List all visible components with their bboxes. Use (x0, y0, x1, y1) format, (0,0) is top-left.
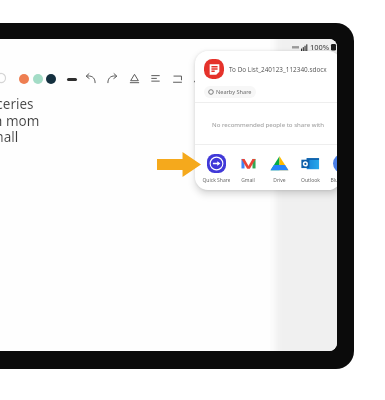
staticText: Outlook (301, 177, 320, 184)
staticText: Gmail (241, 177, 255, 184)
button[interactable]: Nearby Share (208, 86, 252, 98)
staticText: Buy groceries (0, 95, 34, 113)
staticText: Quick Share (202, 177, 230, 184)
staticText: Lunch with mom (0, 112, 40, 130)
button[interactable]: Gmail (234, 154, 262, 184)
button[interactable]: Bluetooth (328, 154, 337, 184)
button[interactable]: To Do List_240123_112340.sdocx (204, 59, 327, 79)
staticText: Nearby Share (216, 88, 252, 96)
staticText: Drive (273, 177, 286, 184)
staticText: To Do List_240123_112340.sdocx (229, 65, 327, 74)
staticText: No recommended people to share with (212, 120, 324, 128)
staticText: Bluetooth (330, 177, 337, 184)
button[interactable]: Outlook (296, 154, 324, 184)
staticText: 100% (310, 42, 330, 52)
button[interactable]: Drive (265, 154, 293, 184)
staticText: Go to mall (0, 128, 19, 146)
button[interactable]: Quick Share (202, 154, 230, 184)
